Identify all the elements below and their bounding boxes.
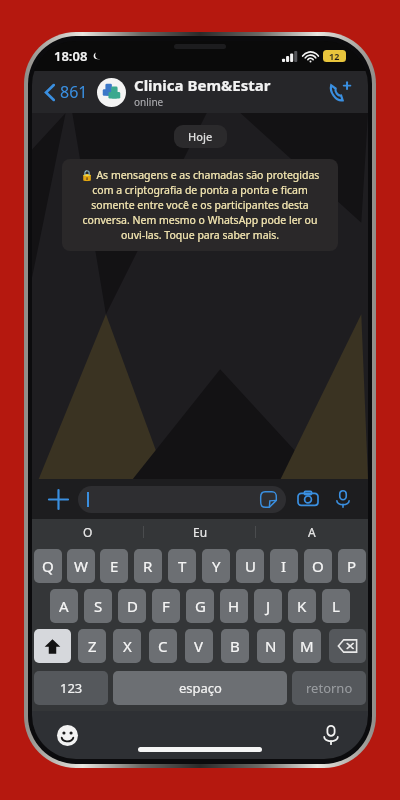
staticText: M [300,636,314,656]
button[interactable]: Add call [322,74,358,110]
staticText: O [312,556,324,576]
staticText: D [127,596,138,616]
staticText: A [308,524,316,540]
button[interactable]: A [50,589,78,623]
staticText: X [123,636,132,656]
staticText: G [195,596,206,616]
staticText: K [297,596,307,616]
staticText: J [266,596,271,616]
staticText: Z [88,636,97,656]
button[interactable]: Y [202,549,230,583]
staticText: T [178,556,187,576]
staticText: Hoje [188,129,213,144]
button[interactable]: O [304,549,332,583]
button[interactable]: Voice message [330,486,356,512]
button[interactable]: L [322,589,350,623]
staticText: U [245,556,256,576]
staticText: S [94,596,103,616]
button[interactable]: D [118,589,146,623]
staticText: C [158,636,168,656]
staticText: 861 [60,81,88,103]
staticText: retorno [306,679,353,697]
staticText: R [143,556,153,576]
staticText: online [134,95,164,109]
button[interactable]: Clinica Bem&Estar [97,75,322,109]
button[interactable]: F [152,589,180,623]
button[interactable]: Camera [295,486,321,512]
button[interactable]: Emoji [52,720,82,750]
staticText: N [265,636,277,656]
button[interactable]: M [293,629,321,663]
button[interactable]: S [84,589,112,623]
staticText: H [228,596,240,616]
button[interactable]: K [288,589,316,623]
button[interactable]: 🔒 As mensagens e as chamadas são protegi… [62,159,338,251]
staticText: Clinica Bem&Estar [134,75,271,95]
staticText: Q [42,556,54,576]
staticText: Eu [193,524,208,540]
staticText: W [74,556,88,576]
button[interactable]: Dictation [316,720,346,750]
staticText: Y [212,556,221,576]
button[interactable]: H [220,589,248,623]
staticText: P [347,556,357,576]
button[interactable]: X [113,629,141,663]
staticText: espaço [179,679,222,697]
button[interactable]: Attach [44,485,72,513]
button[interactable]: A [256,519,368,545]
staticText: B [230,636,240,656]
button[interactable]: P [338,549,366,583]
staticText: E [110,556,119,576]
staticText: 18:08 [54,47,88,65]
staticText: 123 [60,679,83,697]
staticText: 🔒 As mensagens e as chamadas são protegi… [74,168,326,242]
button[interactable]: Hoje [174,125,227,148]
button[interactable]: Backspace [329,629,366,663]
button[interactable]: E [100,549,128,583]
button[interactable] [78,486,286,513]
staticText: 12 [329,50,340,62]
button[interactable]: J [254,589,282,623]
staticText: F [162,596,170,616]
button[interactable]: Eu [144,519,256,545]
button[interactable]: retorno [292,671,366,705]
button[interactable]: Q [34,549,62,583]
button[interactable]: C [149,629,177,663]
button[interactable]: Shift [34,629,71,663]
button[interactable]: N [257,629,285,663]
button[interactable]: U [236,549,264,583]
button[interactable]: G [186,589,214,623]
staticText: V [194,636,204,656]
staticText: O [83,524,93,540]
button[interactable]: R [134,549,162,583]
button[interactable]: O [32,519,144,545]
button[interactable]: espaço [113,671,287,705]
button[interactable]: T [168,549,196,583]
staticText: A [59,596,69,616]
button[interactable]: Z [78,629,106,663]
button[interactable]: Back, 861 unread [42,77,91,107]
button[interactable]: W [67,549,95,583]
button[interactable]: I [270,549,298,583]
staticText: I [281,556,287,576]
staticText: L [332,596,340,616]
button[interactable]: V [185,629,213,663]
button[interactable]: B [221,629,249,663]
button[interactable]: 123 [34,671,108,705]
